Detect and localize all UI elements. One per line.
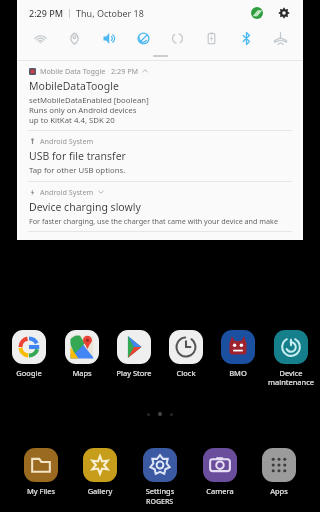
staticText: Device charging slowly [29,200,141,214]
staticText: Apps [254,486,304,496]
staticText: | [63,7,76,18]
button[interactable]: Bluetooth [230,26,262,50]
staticText: MobileDataToogle [29,79,119,93]
button[interactable]: Wi-Fi [24,26,56,50]
staticText: Clock [161,368,211,378]
button[interactable]: Play Store [109,330,159,378]
staticText: BMO [213,368,263,378]
button[interactable]: BMO [213,330,263,378]
staticText: Mobile Data Toggle [40,66,106,76]
button[interactable]: Google [4,330,54,378]
staticText: My Files [16,486,66,496]
staticText: Google [4,368,54,378]
button[interactable]: Clock [161,330,211,378]
button[interactable]: Android System [17,182,303,231]
button[interactable]: Data saver [248,4,266,22]
staticText: Settings [135,486,185,496]
staticText: Gallery [75,486,125,496]
button[interactable]: Power saving [195,26,227,50]
button[interactable]: Android System [17,131,303,181]
button[interactable]: Gallery [75,448,125,496]
button[interactable]: My Files [16,448,66,496]
staticText: setMobileDataEnabled [boolean] Runs only… [29,95,149,125]
button[interactable]: Apps [254,448,304,496]
staticText: 2:29 PM [29,7,63,19]
staticText: Tap for other USB options. [29,165,126,176]
staticText: Thu, October 18 [76,7,144,19]
button[interactable]: Location [58,26,90,50]
staticText: Camera [195,486,245,496]
staticText: Android System [40,187,94,197]
button[interactable]: Mobile Data Toggle [17,61,303,130]
staticText: For faster charging, use the charger tha… [29,216,293,226]
staticText: USB for file transfer [29,149,126,163]
button[interactable]: Sound [93,26,125,50]
button[interactable]: Airplane mode [264,26,296,50]
button[interactable]: Camera [195,448,245,496]
staticText: Device maintenance [266,368,316,387]
button[interactable]: Settings [135,448,185,496]
staticText: Maps [57,368,107,378]
button[interactable]: Quick connect [127,26,159,50]
button[interactable]: Device maintenance [266,330,316,387]
staticText: ROGERS [146,497,174,507]
button[interactable]: Maps [57,330,107,378]
staticText: Play Store [109,368,159,378]
staticText: 2:29 PM [111,66,138,76]
button[interactable]: Settings [275,4,293,22]
button[interactable]: Auto rotate [161,26,193,50]
staticText: Android System [40,136,94,146]
